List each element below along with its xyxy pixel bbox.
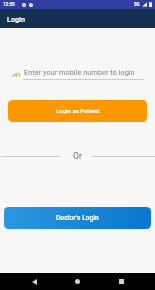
staticText: 12:55: [3, 2, 15, 7]
staticText: +91: [12, 72, 21, 78]
staticText: Enter your mobile number to login: [24, 68, 135, 77]
button[interactable]: Recent apps: [113, 273, 129, 290]
staticText: 5G: [134, 2, 140, 7]
staticText: Login as Patient: [56, 108, 100, 115]
staticText: Login: [7, 15, 25, 23]
button[interactable]: Login as Patient: [8, 100, 147, 122]
staticText: Or: [73, 151, 82, 161]
button[interactable]: Back: [26, 273, 42, 290]
staticText: Doctor's Login: [56, 214, 99, 222]
button[interactable]: Home: [69, 273, 85, 290]
button[interactable]: Doctor's Login: [4, 207, 151, 229]
